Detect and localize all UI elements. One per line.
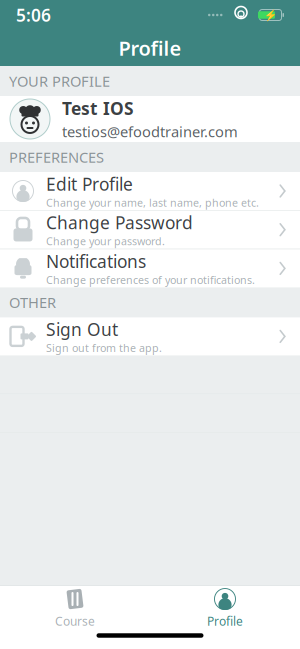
staticText: Course: [55, 613, 95, 629]
staticText: Change Password: [46, 211, 193, 234]
staticText: PREFERENCES: [9, 147, 104, 167]
staticText: Change your password.: [46, 234, 165, 248]
button[interactable]: Edit Profile: [0, 172, 300, 210]
staticText: Test IOS: [62, 97, 134, 120]
staticText: Change preferences of your notifications…: [46, 273, 255, 287]
button[interactable]: Profile: [150, 582, 300, 633]
staticText: testios@efoodtrainer.com: [62, 122, 238, 141]
staticText: Sign out from the app.: [46, 341, 162, 355]
staticText: 5:06: [16, 3, 51, 26]
button[interactable]: Notifications: [0, 249, 300, 287]
button[interactable]: Test IOS: [0, 96, 300, 142]
button[interactable]: Change Password: [0, 211, 300, 249]
staticText: Edit Profile: [46, 172, 133, 195]
staticText: Sign Out: [46, 318, 118, 341]
staticText: Profile: [118, 35, 181, 61]
staticText: OTHER: [9, 293, 56, 312]
staticText: Change your name, last name, phone etc.: [46, 195, 259, 210]
staticText: Profile: [207, 613, 243, 629]
button[interactable]: Course: [0, 582, 150, 633]
staticText: YOUR PROFILE: [9, 71, 110, 91]
staticText: Notifications: [46, 250, 146, 273]
staticText: ⚡: [264, 9, 277, 21]
button[interactable]: Sign Out: [0, 317, 300, 355]
